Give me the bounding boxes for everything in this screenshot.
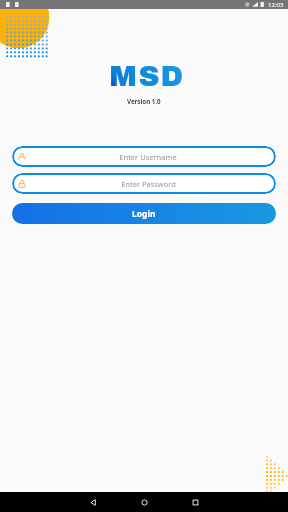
button[interactable]: Enter Password — [12, 173, 276, 194]
staticText: 12:03 — [268, 1, 284, 9]
staticText: Login — [132, 208, 156, 220]
staticText: Enter Username — [119, 152, 177, 162]
staticText: Version 1.0 — [127, 97, 161, 105]
button[interactable]: Login — [12, 203, 276, 224]
button[interactable]: Enter Username — [12, 146, 276, 167]
staticText: Enter Password — [121, 179, 176, 189]
button[interactable]: Home — [134, 492, 154, 512]
button[interactable]: Back — [83, 492, 103, 512]
button[interactable]: Recent apps — [185, 492, 205, 512]
staticText: MSD — [109, 61, 185, 93]
